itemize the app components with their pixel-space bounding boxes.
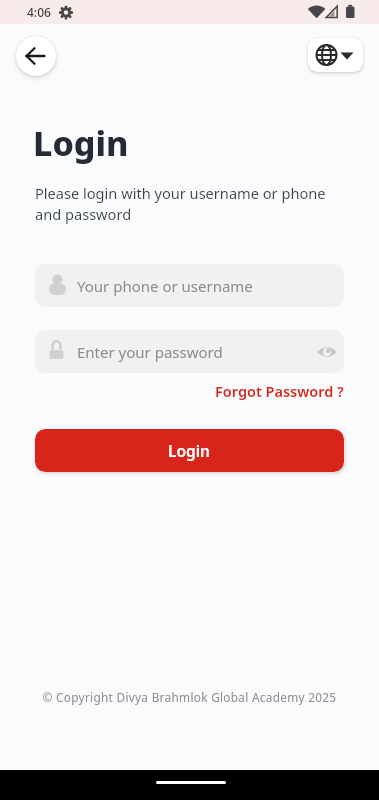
staticText: Login: [33, 120, 129, 166]
button[interactable]: [16, 36, 56, 76]
staticText: 4:06: [27, 4, 51, 20]
button[interactable]: Login: [35, 429, 344, 472]
button[interactable]: Your phone or username: [35, 264, 344, 307]
staticText: Please login with your username or phone…: [35, 183, 326, 224]
staticText: Enter your password: [77, 342, 223, 362]
button[interactable]: Enter your password: [35, 330, 344, 373]
staticText: Your phone or username: [77, 276, 253, 296]
button[interactable]: Forgot Password ?: [215, 381, 344, 401]
staticText: Login: [168, 440, 211, 461]
button[interactable]: [308, 38, 363, 72]
staticText: © Copyright Divya Brahmlok Global Academ…: [0, 689, 379, 705]
